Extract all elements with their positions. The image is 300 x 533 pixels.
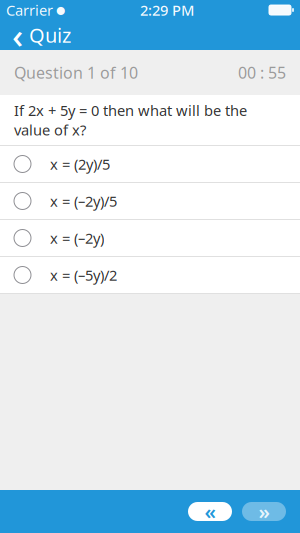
staticText: Carrier (6, 0, 53, 20)
staticText: » (258, 498, 269, 525)
button[interactable]: ‹ (0, 20, 83, 50)
staticText: x = (–5y)/2 (50, 265, 117, 285)
staticText: Quiz (29, 22, 71, 48)
staticText: ● (53, 4, 65, 16)
button[interactable]: x = (–2y) (0, 220, 300, 256)
button[interactable]: Next question (242, 502, 286, 521)
staticText: ‹ (12, 12, 23, 58)
button[interactable]: x = (–2y)/5 (0, 183, 300, 219)
button[interactable]: x = (2y)/5 (0, 146, 300, 182)
staticText: Question 1 of 10 (14, 62, 138, 83)
staticText: x = (2y)/5 (50, 154, 110, 174)
staticText: x = (–2y) (50, 228, 104, 248)
staticText: « (204, 498, 215, 525)
button[interactable]: Previous question (188, 502, 232, 521)
staticText: x = (–2y)/5 (50, 191, 117, 211)
staticText: 00 : 55 (238, 62, 286, 83)
button[interactable]: x = (–5y)/2 (0, 257, 300, 293)
staticText: 2:29 PM (140, 0, 194, 20)
staticText: If 2x + 5y = 0 then what will be the val… (14, 100, 247, 139)
